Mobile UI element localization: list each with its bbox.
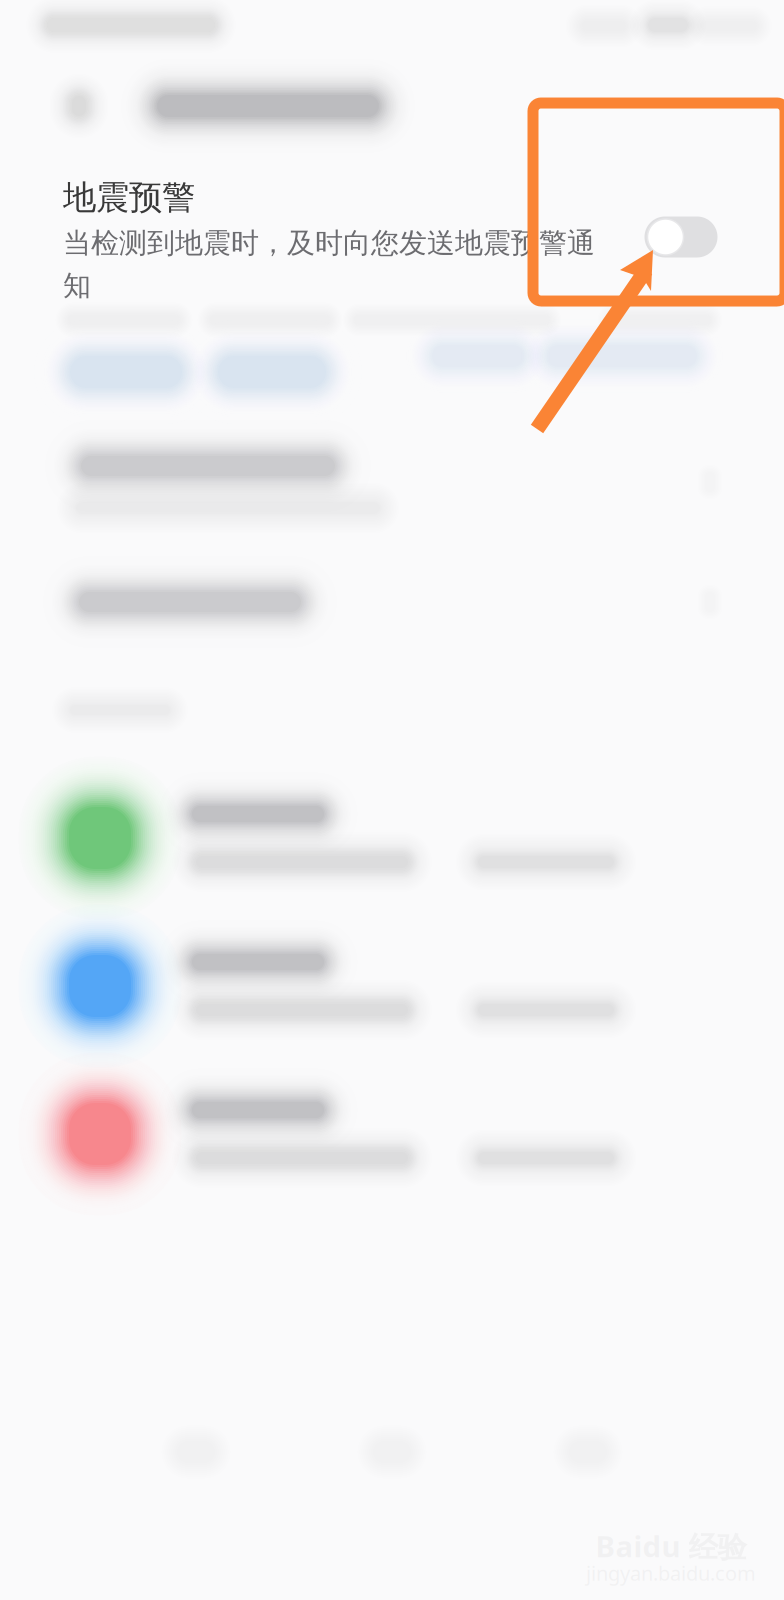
staticText: 知 bbox=[63, 268, 91, 303]
button[interactable]: 地震预警开关 bbox=[644, 216, 717, 257]
staticText: Baidu 经验 bbox=[595, 1526, 746, 1565]
staticText: 地震预警 bbox=[63, 177, 195, 218]
staticText: 当检测到地震时，及时向您发送地震预警通 bbox=[63, 226, 595, 260]
